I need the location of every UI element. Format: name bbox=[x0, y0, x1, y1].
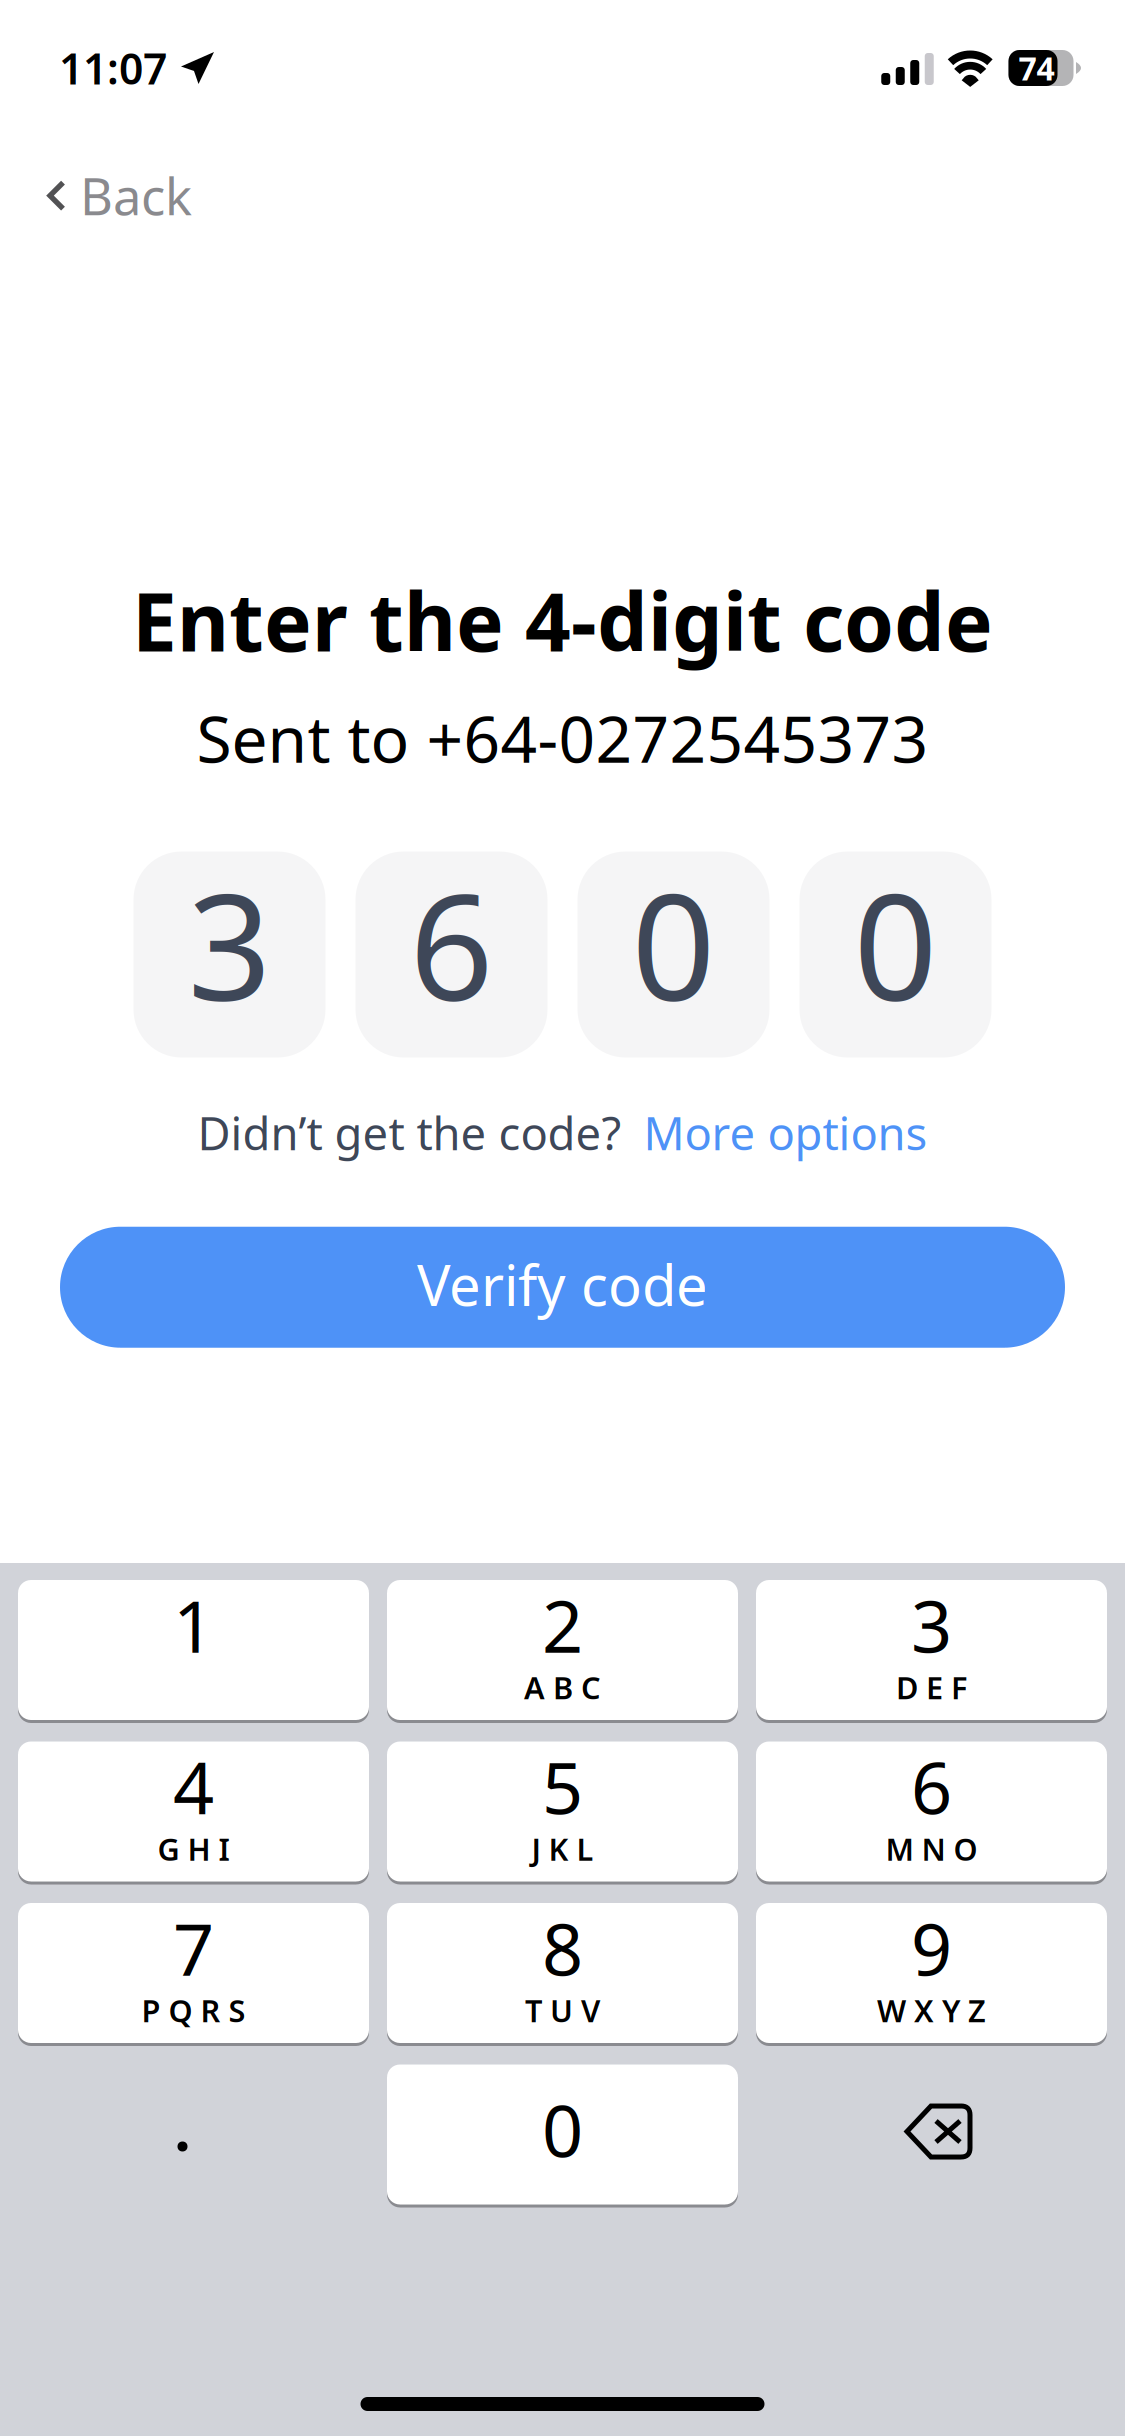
button[interactable]: 0 bbox=[387, 2064, 738, 2204]
staticText: Back bbox=[80, 162, 192, 229]
staticText: 0 bbox=[853, 846, 937, 1041]
button[interactable]: Delete bbox=[756, 2064, 1107, 2204]
button[interactable]: More options bbox=[643, 1102, 927, 1163]
staticText: Didn’t get the code? bbox=[197, 1102, 621, 1163]
staticText: T U V bbox=[525, 1990, 600, 2031]
staticText: 11:07 bbox=[59, 40, 167, 96]
staticText: A B C bbox=[524, 1667, 601, 1708]
staticText: 4 bbox=[173, 1738, 214, 1834]
staticText: 7 bbox=[173, 1900, 214, 1996]
staticText: 3 bbox=[187, 846, 271, 1041]
staticText: 3 bbox=[911, 1577, 952, 1673]
staticText: G H I bbox=[157, 1828, 229, 1869]
staticText: D E F bbox=[896, 1667, 967, 1708]
staticText: 0 bbox=[631, 846, 715, 1041]
staticText: 2 bbox=[542, 1577, 583, 1673]
staticText: 9 bbox=[911, 1900, 952, 1996]
staticText: More options bbox=[643, 1102, 927, 1163]
button[interactable]: Verify code bbox=[60, 1227, 1065, 1348]
staticText: Verify code bbox=[417, 1247, 708, 1321]
button[interactable]: 7 bbox=[18, 1903, 369, 2043]
button[interactable]: 8 bbox=[387, 1903, 738, 2043]
button[interactable]: 6 bbox=[756, 1741, 1107, 1881]
staticText: W X Y Z bbox=[877, 1990, 986, 2031]
staticText: 8 bbox=[542, 1900, 583, 1996]
staticText: 6 bbox=[409, 846, 493, 1041]
staticText: 0 bbox=[542, 2081, 583, 2177]
staticText: J K L bbox=[531, 1828, 593, 1869]
staticText: 6 bbox=[911, 1738, 952, 1834]
button[interactable]: Period bbox=[18, 2064, 369, 2204]
staticText: 74 bbox=[1018, 47, 1054, 89]
staticText: 1 bbox=[173, 1577, 214, 1673]
button[interactable]: 3 bbox=[756, 1580, 1107, 1720]
button[interactable]: 2 bbox=[387, 1580, 738, 1720]
staticText: 5 bbox=[542, 1738, 583, 1834]
staticText: Sent to +64-0272545373 bbox=[196, 695, 928, 780]
button[interactable]: Back bbox=[0, 136, 226, 247]
staticText: Enter the 4-digit code bbox=[132, 567, 993, 673]
staticText: M N O bbox=[885, 1828, 977, 1869]
button[interactable]: 4 bbox=[18, 1741, 369, 1881]
button[interactable]: 9 bbox=[756, 1903, 1107, 2043]
staticText: P Q R S bbox=[141, 1990, 245, 2031]
button[interactable]: 5 bbox=[387, 1741, 738, 1881]
button[interactable]: 1 bbox=[18, 1580, 369, 1720]
